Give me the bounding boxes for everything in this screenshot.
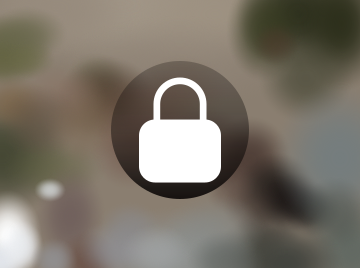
- button[interactable]: Locked content: [111, 61, 249, 199]
